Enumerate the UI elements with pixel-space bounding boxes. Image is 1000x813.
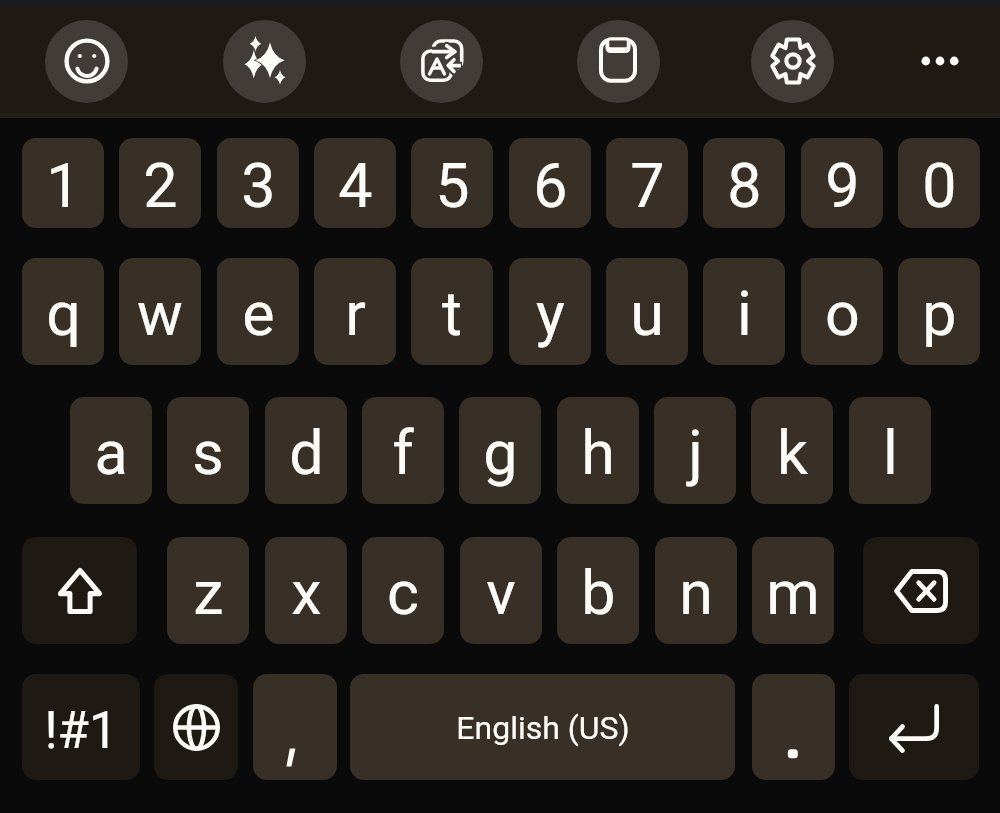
staticText: i xyxy=(737,278,752,349)
button[interactable]: z xyxy=(167,537,249,644)
button[interactable]: Period xyxy=(752,674,835,780)
staticText: 4 xyxy=(338,150,373,221)
staticText: 3 xyxy=(241,150,276,221)
button[interactable]: Emoji xyxy=(45,20,128,103)
staticText: s xyxy=(192,417,224,488)
button[interactable]: g xyxy=(459,397,541,504)
button[interactable]: 2 xyxy=(119,138,201,228)
staticText: y xyxy=(536,278,565,349)
staticText: 1 xyxy=(46,150,81,221)
button[interactable]: f xyxy=(362,397,444,504)
staticText: k xyxy=(777,417,808,488)
button[interactable]: Settings xyxy=(751,20,834,103)
staticText: r xyxy=(345,278,366,349)
button[interactable]: d xyxy=(265,397,347,504)
button[interactable]: j xyxy=(654,397,736,504)
staticText: x xyxy=(291,557,322,628)
staticText: g xyxy=(483,417,518,488)
staticText: n xyxy=(679,557,713,628)
button[interactable]: !#1 xyxy=(22,674,140,780)
button[interactable]: q xyxy=(22,258,104,365)
button[interactable]: v xyxy=(460,537,542,644)
button[interactable]: b xyxy=(557,537,639,644)
button[interactable]: c xyxy=(362,537,444,644)
button[interactable]: 3 xyxy=(217,138,299,228)
staticText: l xyxy=(883,417,898,488)
staticText: 2 xyxy=(143,150,178,221)
staticText: w xyxy=(137,278,183,349)
button[interactable]: s xyxy=(167,397,249,504)
staticText: p xyxy=(922,278,957,349)
staticText: e xyxy=(242,278,275,349)
button[interactable]: p xyxy=(898,258,980,365)
staticText: 8 xyxy=(727,150,762,221)
button[interactable]: k xyxy=(751,397,833,504)
staticText: 0 xyxy=(922,150,957,221)
button[interactable]: w xyxy=(119,258,201,365)
staticText: v xyxy=(486,557,516,628)
button[interactable]: 6 xyxy=(509,138,591,228)
button[interactable]: More options xyxy=(900,21,980,101)
button[interactable]: r xyxy=(314,258,396,365)
button[interactable]: Translate xyxy=(400,20,483,103)
button[interactable]: 9 xyxy=(801,138,883,228)
button[interactable]: 7 xyxy=(606,138,688,228)
staticText: 7 xyxy=(630,150,665,221)
button[interactable]: Comma xyxy=(253,674,337,780)
staticText: 6 xyxy=(533,150,568,221)
button[interactable]: Shift xyxy=(22,537,137,644)
button[interactable]: n xyxy=(655,537,737,644)
button[interactable]: o xyxy=(801,258,883,365)
staticText: j xyxy=(688,417,703,488)
staticText: f xyxy=(392,417,414,488)
button[interactable]: t xyxy=(411,258,493,365)
staticText: d xyxy=(289,417,324,488)
staticText: t xyxy=(442,278,462,349)
button[interactable]: h xyxy=(557,397,639,504)
staticText: c xyxy=(387,557,419,628)
staticText: 5 xyxy=(435,150,470,221)
button[interactable]: 0 xyxy=(898,138,980,228)
staticText: b xyxy=(581,557,616,628)
button[interactable]: x xyxy=(265,537,347,644)
button[interactable]: l xyxy=(849,397,931,504)
button[interactable]: a xyxy=(70,397,152,504)
button[interactable]: Enter xyxy=(849,674,979,780)
staticText: u xyxy=(630,278,664,349)
staticText: o xyxy=(825,278,860,349)
button[interactable]: e xyxy=(217,258,299,365)
button[interactable]: 1 xyxy=(22,138,104,228)
button[interactable]: 4 xyxy=(314,138,396,228)
staticText: h xyxy=(581,417,615,488)
button[interactable]: AI suggestions xyxy=(223,20,306,103)
staticText: !#1 xyxy=(44,701,118,761)
staticText: English (US) xyxy=(456,709,630,747)
staticText: q xyxy=(46,278,81,349)
staticText: z xyxy=(193,557,224,628)
staticText: m xyxy=(766,557,820,628)
button[interactable]: 5 xyxy=(411,138,493,228)
button[interactable]: m xyxy=(752,537,834,644)
button[interactable]: y xyxy=(509,258,591,365)
button[interactable]: 8 xyxy=(703,138,785,228)
button[interactable]: u xyxy=(606,258,688,365)
button[interactable]: Change language xyxy=(154,674,238,780)
button[interactable]: Backspace xyxy=(863,537,979,644)
staticText: 9 xyxy=(825,150,860,221)
button[interactable]: English (US) xyxy=(350,674,735,780)
staticText: a xyxy=(94,417,128,488)
button[interactable]: i xyxy=(703,258,785,365)
button[interactable]: Clipboard xyxy=(577,20,660,103)
